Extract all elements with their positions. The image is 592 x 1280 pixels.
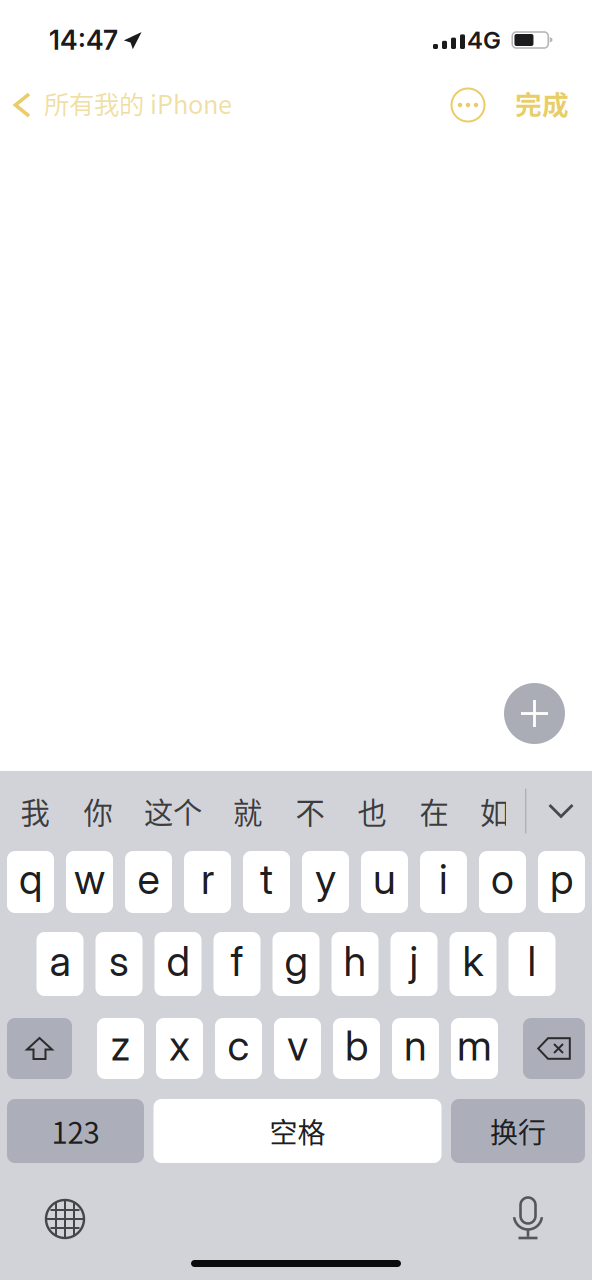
- staticText: 这个: [144, 790, 202, 832]
- staticText: 4G: [467, 25, 501, 54]
- staticText: 我: [20, 790, 49, 832]
- button[interactable]: p: [538, 851, 585, 913]
- button[interactable]: m: [451, 1018, 498, 1079]
- staticText: x: [169, 1020, 190, 1070]
- staticText: u: [373, 854, 396, 904]
- staticText: t: [260, 854, 273, 904]
- staticText: l: [527, 936, 536, 986]
- button[interactable]: 我: [4, 781, 66, 841]
- staticText: 空格: [269, 1111, 325, 1151]
- staticText: b: [345, 1020, 368, 1070]
- button[interactable]: 更多: [444, 68, 501, 130]
- staticText: j: [409, 936, 418, 986]
- button[interactable]: q: [7, 851, 54, 913]
- staticText: h: [343, 936, 366, 986]
- button[interactable]: 这个: [130, 781, 216, 841]
- staticText: 就: [233, 790, 262, 832]
- button[interactable]: y: [302, 851, 349, 913]
- staticText: 所有我的 iPhone: [44, 85, 232, 121]
- button[interactable]: r: [184, 851, 231, 913]
- staticText: e: [137, 854, 159, 904]
- staticText: 14:47: [49, 24, 118, 56]
- button[interactable]: i: [420, 851, 467, 913]
- button[interactable]: b: [333, 1018, 380, 1079]
- button[interactable]: 语音输入: [500, 1191, 556, 1247]
- button[interactable]: 收起: [530, 781, 592, 841]
- staticText: y: [315, 854, 336, 904]
- staticText: k: [462, 936, 483, 986]
- staticText: 你: [83, 790, 112, 832]
- button[interactable]: z: [97, 1018, 144, 1079]
- button[interactable]: 你: [66, 781, 130, 841]
- button[interactable]: g: [272, 932, 319, 996]
- button[interactable]: 删除: [523, 1018, 585, 1079]
- staticText: s: [109, 936, 129, 986]
- staticText: 123: [51, 1110, 99, 1152]
- button[interactable]: c: [215, 1018, 262, 1079]
- staticText: p: [550, 854, 573, 904]
- staticText: 不: [295, 790, 324, 832]
- button[interactable]: u: [361, 851, 408, 913]
- button[interactable]: 换行: [451, 1099, 585, 1163]
- button[interactable]: 完成: [501, 65, 583, 133]
- button[interactable]: 空格: [153, 1099, 441, 1163]
- button[interactable]: 123: [7, 1099, 144, 1163]
- staticText: f: [230, 936, 243, 986]
- staticText: w: [74, 854, 105, 904]
- button[interactable]: o: [479, 851, 526, 913]
- button[interactable]: 切换键盘: [37, 1191, 93, 1247]
- button[interactable]: a: [36, 932, 83, 996]
- staticText: o: [491, 854, 514, 904]
- button[interactable]: 不: [279, 781, 341, 841]
- button[interactable]: w: [66, 851, 113, 913]
- staticText: z: [110, 1020, 130, 1070]
- staticText: m: [457, 1020, 492, 1070]
- button[interactable]: 在: [403, 781, 465, 841]
- button[interactable]: j: [390, 932, 437, 996]
- staticText: q: [19, 854, 42, 904]
- staticText: c: [227, 1020, 249, 1070]
- button[interactable]: e: [125, 851, 172, 913]
- button[interactable]: l: [508, 932, 555, 996]
- staticText: a: [49, 936, 70, 986]
- staticText: 换行: [490, 1111, 546, 1151]
- staticText: i: [439, 854, 448, 904]
- staticText: r: [201, 854, 214, 904]
- staticText: 也: [357, 790, 386, 832]
- button[interactable]: 也: [341, 781, 403, 841]
- button[interactable]: Shift: [7, 1018, 72, 1079]
- staticText: 完成: [515, 84, 569, 122]
- button[interactable]: d: [154, 932, 201, 996]
- button[interactable]: n: [392, 1018, 439, 1079]
- button[interactable]: 所有我的 iPhone: [0, 65, 232, 125]
- staticText: 如果: [480, 790, 538, 832]
- button[interactable]: s: [95, 932, 142, 996]
- button[interactable]: 就: [216, 781, 279, 841]
- staticText: g: [284, 936, 307, 986]
- button[interactable]: f: [213, 932, 260, 996]
- button[interactable]: t: [243, 851, 290, 913]
- button[interactable]: 如果: [465, 781, 506, 841]
- button[interactable]: h: [331, 932, 378, 996]
- staticText: 在: [419, 790, 448, 832]
- staticText: d: [166, 936, 189, 986]
- button[interactable]: k: [449, 932, 496, 996]
- button[interactable]: x: [156, 1018, 203, 1079]
- button[interactable]: 添加: [504, 683, 565, 744]
- staticText: v: [287, 1020, 308, 1070]
- button[interactable]: v: [274, 1018, 321, 1079]
- staticText: n: [404, 1020, 427, 1070]
